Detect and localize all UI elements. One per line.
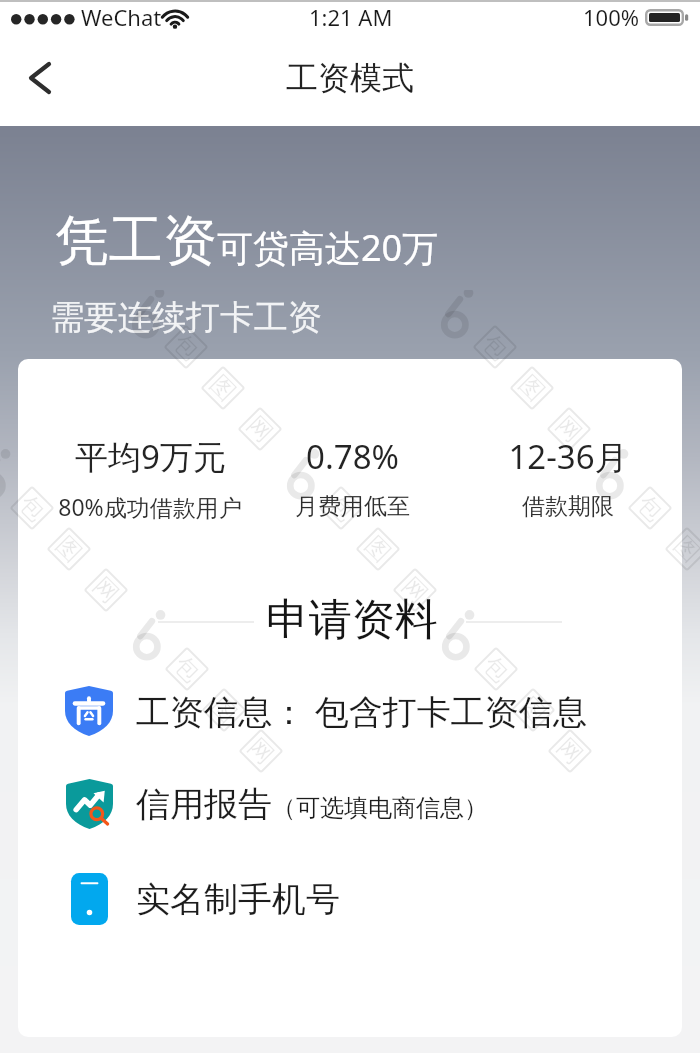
staticText: 包 <box>631 489 669 527</box>
staticText: 网 <box>242 732 280 770</box>
staticText: 图 <box>514 691 552 729</box>
staticText: 图 <box>359 530 397 568</box>
staticText: 1:21 AM <box>309 2 393 32</box>
staticText: 网 <box>87 571 125 609</box>
staticText: 包 <box>13 489 51 527</box>
button[interactable]: 实名制手机号 <box>18 857 682 941</box>
staticText: 图 <box>205 691 243 729</box>
staticText: 包 <box>168 650 206 688</box>
button[interactable]: 工资信息： 包含打卡工资信息 <box>18 669 682 753</box>
staticText: 图 <box>513 369 551 407</box>
staticText: 借款期限 <box>522 492 614 521</box>
staticText: 网 <box>551 732 589 770</box>
staticText: 网 <box>241 410 279 448</box>
staticText: 网 <box>550 410 588 448</box>
staticText: 实名制手机号 <box>136 878 340 921</box>
staticText: 工资信息： 包含打卡工资信息 <box>136 688 587 734</box>
staticText: 图 <box>50 530 88 568</box>
staticText: 工资模式 <box>286 58 414 98</box>
staticText: 包 <box>477 650 515 688</box>
staticText: 需要连续打卡工资 <box>50 296 322 339</box>
staticText: 凭工资 <box>55 207 217 275</box>
staticText: 12-36月 <box>508 434 628 479</box>
staticText: 申请资料 <box>266 593 438 647</box>
staticText: （可选填电商信息） <box>272 793 488 823</box>
staticText: 包 <box>476 328 514 366</box>
staticText: 包 <box>167 328 205 366</box>
staticText: 0.78% <box>306 434 399 479</box>
button[interactable]: Back <box>10 48 70 108</box>
staticText: 可贷高达20万 <box>217 223 439 272</box>
staticText: 信用报告 <box>136 783 272 826</box>
staticText: 平均9万元 <box>75 434 226 479</box>
staticText: 包 <box>322 489 360 527</box>
staticText: 月费用低至 <box>295 492 410 521</box>
staticText: 图 <box>668 530 700 568</box>
button[interactable]: 信用报告 <box>18 762 682 846</box>
staticText: 100% <box>583 2 640 32</box>
staticText: 网 <box>396 571 434 609</box>
staticText: 图 <box>204 369 242 407</box>
staticText: 80%成功借款用户 <box>58 491 242 522</box>
staticText: WeChat <box>81 2 162 32</box>
